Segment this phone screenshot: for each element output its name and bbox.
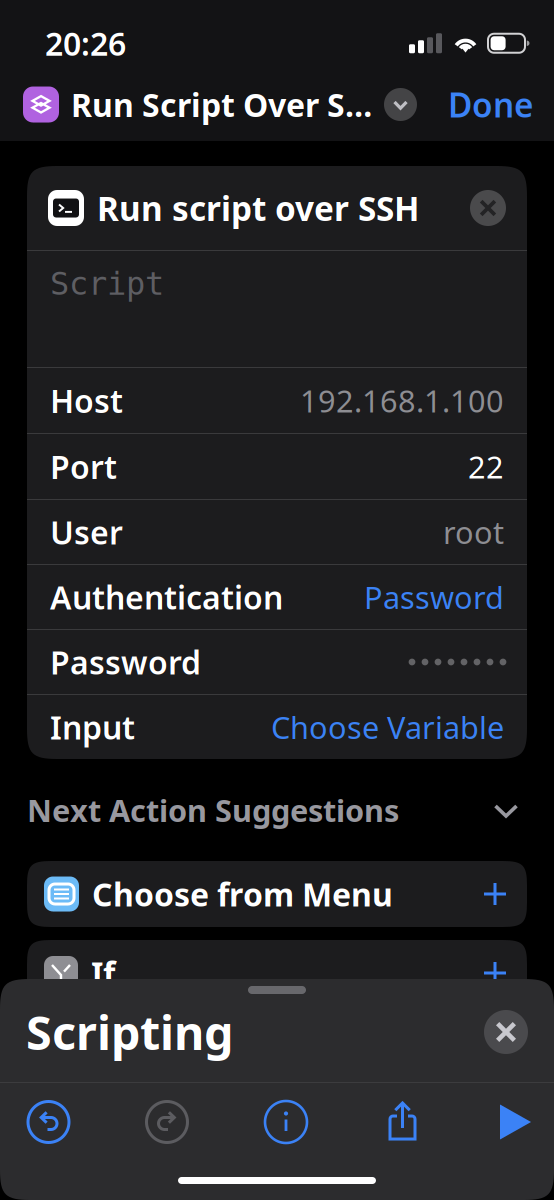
staticText: If — [91, 952, 115, 994]
staticText: Script — [50, 265, 164, 302]
button[interactable]: Run Script Over S… — [23, 83, 417, 126]
staticText: root — [443, 512, 504, 552]
button[interactable]: Redo — [146, 1101, 187, 1142]
button[interactable]: Choose from Menu — [27, 861, 527, 927]
button[interactable]: Run — [498, 1103, 532, 1141]
button[interactable]: Undo — [28, 1101, 69, 1142]
staticText: Password — [364, 577, 504, 617]
button[interactable]: Details — [265, 1101, 307, 1143]
button[interactable]: Password — [27, 630, 527, 694]
staticText: Run Script Over S… — [71, 83, 372, 126]
button[interactable]: Port — [27, 434, 527, 499]
staticText: Password — [50, 641, 201, 683]
button[interactable]: Collapse suggestions — [488, 792, 524, 828]
staticText: 20:26 — [45, 22, 126, 64]
button[interactable]: Close — [484, 1010, 528, 1054]
staticText: 22 — [468, 446, 504, 487]
staticText: Authentication — [50, 576, 283, 618]
button[interactable]: User — [27, 500, 527, 564]
staticText: Input — [50, 706, 135, 748]
button[interactable]: If — [27, 940, 527, 1006]
staticText: Next Action Suggestions — [27, 790, 399, 830]
button[interactable]: Share — [384, 1099, 420, 1145]
button[interactable]: Host — [27, 368, 527, 433]
button[interactable]: Authentication — [27, 565, 527, 629]
staticText: Choose Variable — [271, 707, 504, 747]
staticText: 192.168.1.100 — [300, 380, 504, 421]
button[interactable]: Done — [448, 82, 534, 127]
staticText: Choose from Menu — [92, 873, 393, 915]
staticText: Run script over SSH — [97, 186, 420, 230]
staticText: Scripting — [26, 1001, 233, 1063]
button[interactable]: Remove action — [470, 190, 506, 226]
button[interactable]: Input — [27, 695, 527, 759]
staticText: Host — [50, 379, 123, 422]
staticText: User — [50, 511, 123, 553]
staticText: Done — [448, 82, 534, 127]
staticText: Port — [50, 445, 117, 488]
